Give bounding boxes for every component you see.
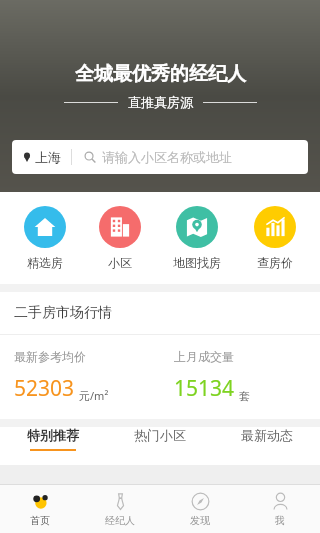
button[interactable]: 查房价 [246,206,304,270]
button[interactable]: 特别推荐 [0,427,106,451]
staticText: 请输入小区名称或地址 [102,149,232,165]
staticText: 精选房 [27,255,63,270]
staticText: 发现 [190,514,210,527]
staticText: 地图找房 [173,255,221,270]
staticText: 二手房市场行情 [14,304,112,322]
button[interactable]: 地图找房 [165,206,229,270]
staticText: 全城最优秀的经纪人 [75,62,246,86]
staticText: 元/m² [79,388,109,403]
staticText: 特别推荐 [27,427,79,443]
staticText: 首页 [30,514,50,527]
staticText: 52303 [14,374,75,403]
button[interactable]: 小区 [91,206,149,270]
staticText: 15134 [174,374,235,403]
button[interactable]: 最新动态 [213,427,320,451]
button[interactable]: 我 [240,492,320,527]
staticText: 最新参考均价 [14,349,86,364]
staticText: 直推真房源 [128,94,193,110]
staticText: 最新动态 [241,427,293,443]
staticText: 小区 [108,255,132,270]
button[interactable]: 经纪人 [80,492,160,527]
staticText: 上海 [35,149,61,165]
button[interactable]: 热门小区 [106,427,213,451]
button[interactable]: 发现 [160,492,240,527]
button[interactable]: 首页 [0,492,80,527]
staticText: 热门小区 [134,427,186,443]
staticText: 经纪人 [105,514,135,527]
button[interactable]: 上海 [12,140,71,174]
staticText: 上月成交量 [174,349,234,364]
button[interactable]: 精选房 [16,206,74,270]
staticText: 查房价 [257,255,293,270]
button[interactable]: 请输入小区名称或地址 [72,140,308,174]
staticText: 我 [275,514,285,527]
staticText: 套 [239,389,250,403]
